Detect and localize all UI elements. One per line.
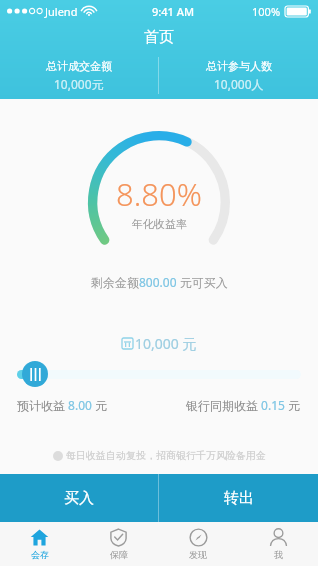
button[interactable]: 转出 [159, 474, 318, 522]
button[interactable]: 买入 [0, 474, 158, 522]
button[interactable]: Amount slider [22, 361, 48, 387]
staticText: 9:41 AM [152, 4, 195, 19]
button[interactable]: 会存 [0, 522, 79, 566]
staticText: 剩余金额800.00 元可买入 [91, 274, 228, 290]
staticText: 总计成交金额 [46, 59, 112, 73]
staticText: 保障 [110, 549, 128, 560]
staticText: Julend [45, 4, 78, 19]
staticText: 预计收益 8.00 元 [17, 397, 108, 413]
staticText: 买入 [64, 489, 94, 508]
staticText: 会存 [31, 549, 49, 560]
staticText: 8.80% [116, 173, 202, 215]
staticText: 10,000人 [214, 76, 264, 92]
staticText: 100% [252, 4, 281, 19]
staticText: 总计参与人数 [206, 59, 272, 73]
button[interactable]: 发现 [158, 522, 238, 566]
staticText: 转出 [224, 489, 254, 508]
staticText: 银行同期收益 0.15 元 [186, 397, 301, 413]
staticText: 我 [274, 549, 283, 560]
staticText: 每日收益自动复投，招商银行千万风险备用金 [66, 449, 266, 462]
button[interactable]: 保障 [79, 522, 158, 566]
staticText: 10,000元 [54, 76, 104, 92]
staticText: 10,000 元 [135, 334, 197, 353]
staticText: 发现 [189, 549, 207, 560]
button[interactable]: 我 [238, 522, 318, 566]
staticText: 年化收益率 [132, 217, 187, 231]
staticText: 首页 [144, 28, 174, 47]
